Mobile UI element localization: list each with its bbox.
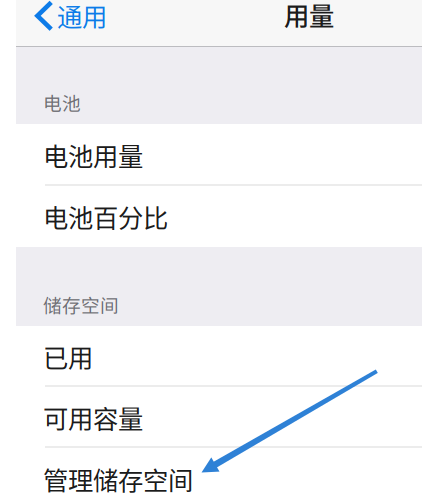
button[interactable]: 管理储存空间: [16, 448, 422, 497]
staticText: 储存空间: [43, 291, 119, 318]
staticText: 电池百分比: [43, 198, 168, 235]
button[interactable]: 电池百分比: [16, 186, 422, 247]
staticText: 电池用量: [43, 137, 143, 173]
staticText: 用量: [284, 0, 334, 33]
button[interactable]: 电池用量: [16, 124, 422, 186]
button[interactable]: 可用容量: [16, 387, 422, 448]
staticText: 通用: [57, 0, 107, 34]
staticText: 已用: [43, 338, 93, 375]
button[interactable]: 已用: [16, 326, 422, 387]
staticText: 管理储存空间: [43, 461, 193, 497]
staticText: 可用容量: [43, 399, 143, 436]
button[interactable]: 通用: [16, 0, 117, 31]
staticText: 电池: [43, 89, 81, 116]
